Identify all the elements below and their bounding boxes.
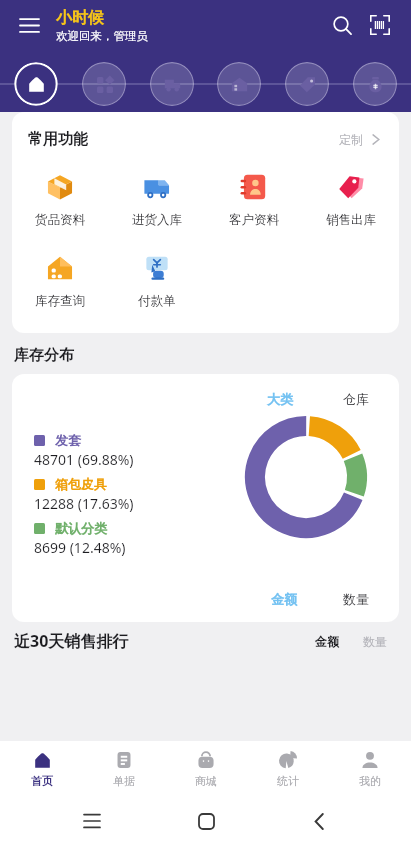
staticText: 单据 bbox=[113, 774, 135, 788]
button[interactable]: Back bbox=[298, 800, 340, 842]
button[interactable]: 金额 bbox=[263, 588, 305, 610]
button[interactable]: Inbound bbox=[150, 62, 194, 106]
button[interactable]: Sales bbox=[285, 62, 329, 106]
staticText: 数量 bbox=[343, 591, 369, 607]
staticText: 我的 bbox=[359, 774, 381, 788]
staticText: 箱包皮具 bbox=[55, 476, 107, 492]
staticText: 发套 bbox=[55, 432, 81, 448]
staticText: 48701 (69.88%) bbox=[34, 450, 134, 469]
staticText: 商城 bbox=[195, 774, 217, 788]
button[interactable]: 数量 bbox=[357, 631, 393, 652]
staticText: 定制 bbox=[339, 132, 363, 147]
button[interactable]: Home bbox=[14, 62, 58, 106]
button[interactable]: 金额 bbox=[309, 631, 345, 652]
staticText: 首页 bbox=[31, 774, 53, 788]
staticText: 默认分类 bbox=[55, 520, 107, 536]
staticText: 进货入库 bbox=[132, 212, 182, 228]
button[interactable]: 首页 bbox=[0, 741, 83, 797]
staticText: 数量 bbox=[363, 634, 387, 649]
staticText: 近30天销售排行 bbox=[14, 630, 129, 652]
button[interactable]: Scan barcode bbox=[363, 8, 397, 42]
button[interactable]: 付款单 bbox=[108, 248, 205, 313]
button[interactable]: Home bbox=[185, 800, 227, 842]
button[interactable]: 货品资料 bbox=[12, 167, 108, 232]
button[interactable]: 进货入库 bbox=[108, 167, 205, 232]
button[interactable]: Finance bbox=[353, 62, 397, 106]
staticText: 销售出库 bbox=[326, 212, 376, 228]
staticText: 库存分布 bbox=[14, 346, 74, 365]
button[interactable]: Recent apps bbox=[71, 800, 113, 842]
staticText: 金额 bbox=[315, 634, 339, 649]
button[interactable]: 定制 bbox=[335, 128, 385, 151]
staticText: 12288 (17.63%) bbox=[34, 494, 134, 513]
button[interactable]: 仓库 bbox=[335, 388, 377, 410]
button[interactable]: 我的 bbox=[329, 741, 411, 797]
button[interactable]: Warehouse bbox=[217, 62, 261, 106]
button[interactable]: Menu bbox=[14, 10, 44, 40]
button[interactable]: 客户资料 bbox=[205, 167, 302, 232]
button[interactable]: 单据 bbox=[83, 741, 165, 797]
button[interactable]: 销售出库 bbox=[302, 167, 399, 232]
staticText: 付款单 bbox=[138, 293, 176, 309]
staticText: 库存查询 bbox=[35, 293, 85, 309]
button[interactable]: Goods bbox=[82, 62, 126, 106]
staticText: 小时候 bbox=[56, 8, 104, 28]
staticText: 统计 bbox=[277, 774, 299, 788]
button[interactable]: 数量 bbox=[335, 588, 377, 610]
button[interactable]: 大类 bbox=[259, 388, 301, 410]
staticText: 欢迎回来，管理员 bbox=[56, 29, 148, 43]
staticText: 客户资料 bbox=[229, 212, 279, 228]
staticText: 大类 bbox=[267, 391, 293, 407]
staticText: 8699 (12.48%) bbox=[34, 538, 126, 557]
staticText: 仓库 bbox=[343, 391, 369, 407]
staticText: 金额 bbox=[271, 591, 297, 607]
button[interactable]: Search bbox=[325, 8, 359, 42]
staticText: 货品资料 bbox=[35, 212, 85, 228]
button[interactable]: 库存查询 bbox=[12, 248, 108, 313]
button[interactable]: 统计 bbox=[247, 741, 329, 797]
staticText: 常用功能 bbox=[28, 130, 88, 149]
button[interactable]: 商城 bbox=[165, 741, 247, 797]
